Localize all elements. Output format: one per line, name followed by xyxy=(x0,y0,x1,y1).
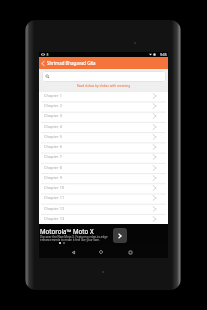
button[interactable]: Chapter 7 xyxy=(39,153,168,163)
staticText: Chapter 9 xyxy=(44,175,62,180)
staticText: Chapter 5 xyxy=(44,134,62,139)
staticText: Chapter 3 xyxy=(44,113,62,118)
button[interactable]: Back xyxy=(39,59,47,67)
button[interactable]: Chapter 11 xyxy=(39,194,168,204)
staticText: Chapter 2 xyxy=(44,103,62,108)
button[interactable]: Chapter 6 xyxy=(39,143,168,153)
button[interactable]: Chapter 13 xyxy=(39,215,168,225)
button[interactable]: Recents xyxy=(126,248,134,256)
staticText: enhancements to make it feel like your o… xyxy=(40,238,100,242)
staticText: Chapter 10 xyxy=(44,185,65,190)
staticText: Chapter 13 xyxy=(44,216,65,221)
staticText: Chapter 8 xyxy=(44,165,62,170)
staticText: Chapter 7 xyxy=(44,154,62,159)
button[interactable]: Back xyxy=(69,248,77,256)
button[interactable]: Chapter 2 xyxy=(39,102,168,112)
staticText: Chapter 6 xyxy=(44,144,62,149)
button[interactable]: Chapter 8 xyxy=(39,164,168,174)
button[interactable]: Chapter 10 xyxy=(39,184,168,194)
button[interactable]: Chapter 3 xyxy=(39,112,168,122)
staticText: Shrimad Bhagavad Gita xyxy=(47,60,96,66)
button[interactable]: Home xyxy=(97,248,105,256)
button[interactable]: Chapter 1 xyxy=(39,92,168,102)
staticText: Read slokas by slokas with meaning xyxy=(39,84,168,88)
staticText: Chapter 12 xyxy=(44,206,65,211)
button[interactable]: Next ad xyxy=(113,228,127,243)
button[interactable]: Chapter 12 xyxy=(39,205,168,215)
button[interactable] xyxy=(42,71,166,82)
staticText: Chapter 11 xyxy=(44,195,65,200)
staticText: Discover the New Moto X. Featuring edge-… xyxy=(40,235,108,239)
staticText: Chapter 1 xyxy=(44,93,62,98)
staticText: Chapter 4 xyxy=(44,124,62,129)
button[interactable]: Chapter 9 xyxy=(39,174,168,184)
button[interactable]: Chapter 4 xyxy=(39,123,168,133)
staticText: Motorola™ Moto X xyxy=(40,227,94,235)
button[interactable]: Chapter 5 xyxy=(39,133,168,143)
staticText: 9:05 xyxy=(160,52,167,57)
